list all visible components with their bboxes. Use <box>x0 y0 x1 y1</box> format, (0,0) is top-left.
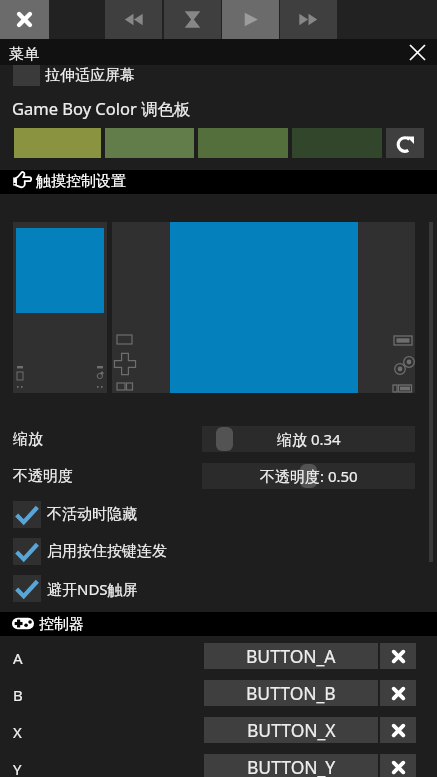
button[interactable]: 不活动时隐藏 <box>0 501 437 528</box>
staticText: Game Boy Color 调色板 <box>12 97 191 120</box>
staticText: BUTTON_A <box>246 644 336 668</box>
staticText: BUTTON_B <box>246 681 336 705</box>
staticText: A <box>13 648 23 668</box>
staticText: B <box>13 685 23 705</box>
button[interactable]: Close menu <box>404 39 430 65</box>
staticText: 控制器 <box>39 615 84 634</box>
staticText: 缩放 <box>13 430 43 449</box>
staticText: BUTTON_Y <box>247 755 336 777</box>
staticText: 不透明度: 0.50 <box>260 466 358 486</box>
button[interactable]: Close <box>0 0 49 39</box>
button[interactable]: 不透明度: 0.50 <box>202 463 415 489</box>
button[interactable]: Landscape layout preview <box>112 222 415 393</box>
button[interactable]: 避开NDS触屏 <box>0 575 437 602</box>
staticText: 启用按住按键连发 <box>47 542 167 561</box>
button[interactable]: BUTTON_A <box>204 643 378 669</box>
button[interactable]: Frame skip <box>164 0 221 39</box>
button[interactable]: BUTTON_X <box>204 717 378 743</box>
button[interactable]: Clear X binding <box>380 717 416 743</box>
button[interactable]: 拉伸适应屏幕 <box>0 65 437 87</box>
staticText: Y <box>13 759 22 777</box>
button[interactable]: Reset palette <box>386 128 424 158</box>
button[interactable]: 启用按住按键连发 <box>0 538 437 565</box>
button[interactable]: 缩放 0.34 <box>202 426 415 452</box>
staticText: 触摸控制设置 <box>36 172 126 191</box>
staticText: 不活动时隐藏 <box>47 505 137 524</box>
button[interactable]: BUTTON_Y <box>204 754 378 777</box>
button[interactable]: Play <box>222 0 279 39</box>
button[interactable]: Rewind <box>105 0 162 39</box>
button[interactable]: Fast forward <box>280 0 337 39</box>
button[interactable]: BUTTON_B <box>204 680 378 706</box>
staticText: 缩放 0.34 <box>277 429 341 449</box>
staticText: 拉伸适应屏幕 <box>45 66 135 85</box>
button[interactable]: Clear B binding <box>380 680 416 706</box>
staticText: BUTTON_X <box>247 718 336 742</box>
staticText: 菜单 <box>9 45 39 64</box>
button[interactable]: Portrait layout preview <box>13 222 107 393</box>
staticText: 避开NDS触屏 <box>47 579 138 599</box>
staticText: 不透明度 <box>13 467 73 486</box>
button[interactable]: Clear A binding <box>380 643 416 669</box>
staticText: X <box>13 722 22 742</box>
button[interactable]: Clear Y binding <box>380 754 416 777</box>
